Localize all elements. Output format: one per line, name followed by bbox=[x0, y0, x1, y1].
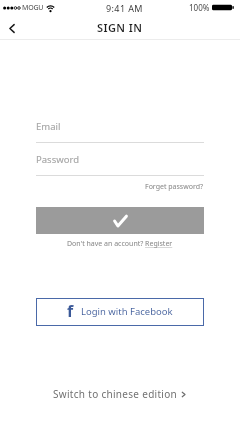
staticText: 100% bbox=[189, 2, 210, 13]
button[interactable]: Switch to chinese edition bbox=[0, 387, 240, 401]
button[interactable]: f bbox=[36, 298, 204, 326]
button[interactable] bbox=[36, 207, 204, 234]
staticText: SIGN IN bbox=[97, 20, 143, 35]
staticText: Password bbox=[36, 153, 79, 166]
staticText: f bbox=[67, 300, 74, 322]
button[interactable]: Forget password? bbox=[145, 182, 204, 192]
staticText: 9:41 AM bbox=[106, 2, 143, 14]
staticText: MOGU bbox=[22, 3, 44, 13]
staticText: Email bbox=[36, 120, 61, 133]
button[interactable] bbox=[5, 21, 19, 35]
staticText: Switch to chinese edition bbox=[53, 387, 178, 401]
button[interactable]: Don't have an account? Register bbox=[67, 239, 173, 249]
staticText: Login with Facebook bbox=[81, 305, 173, 318]
